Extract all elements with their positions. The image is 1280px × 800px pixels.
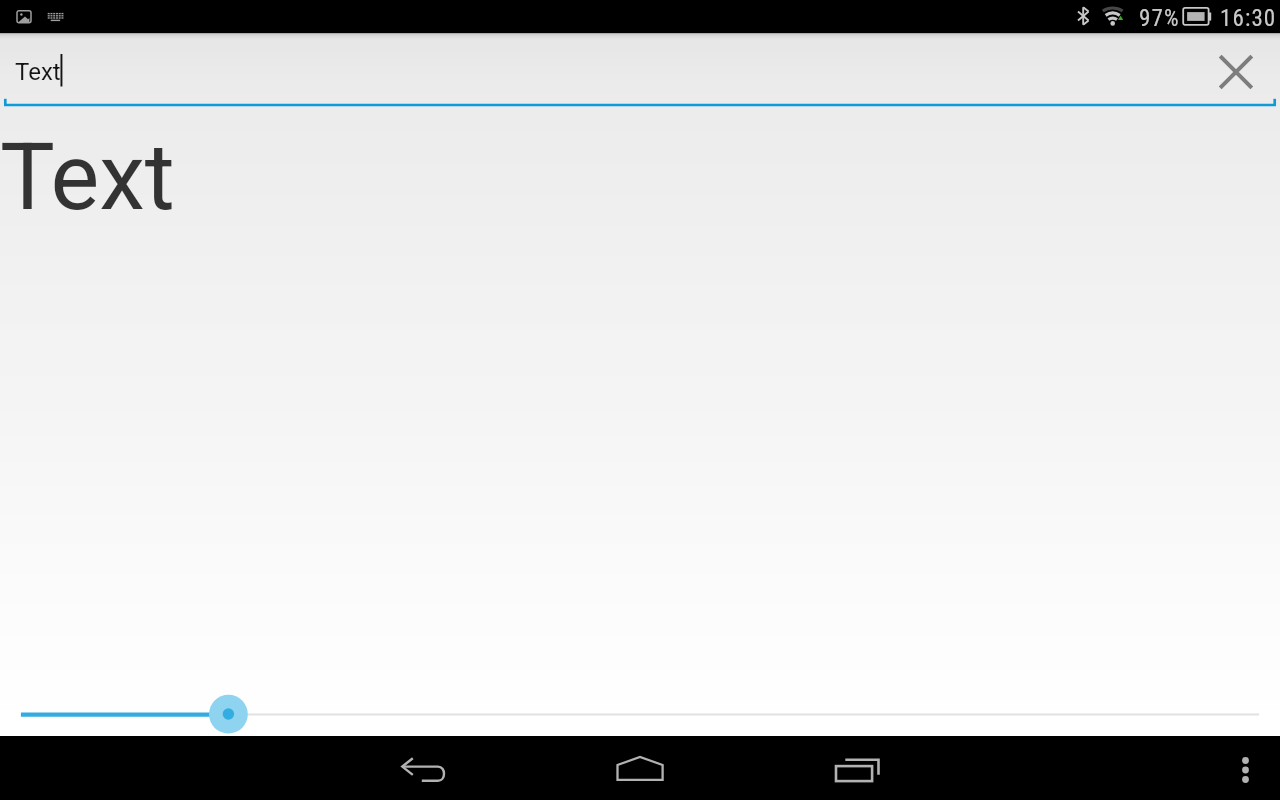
button[interactable]: Recent apps	[826, 736, 894, 800]
staticText: 97%	[1139, 5, 1180, 32]
staticText: Text	[0, 124, 175, 232]
button[interactable]: Back	[389, 736, 457, 800]
staticText: Text	[15, 58, 61, 86]
button[interactable]: Home	[606, 736, 674, 800]
button[interactable]: More options	[1222, 736, 1270, 800]
button[interactable]: Text size slider	[0, 680, 1280, 736]
button[interactable]: Text input field	[0, 33, 1280, 106]
button[interactable]: Clear text	[1211, 48, 1259, 96]
staticText: 16:30	[1220, 5, 1277, 32]
